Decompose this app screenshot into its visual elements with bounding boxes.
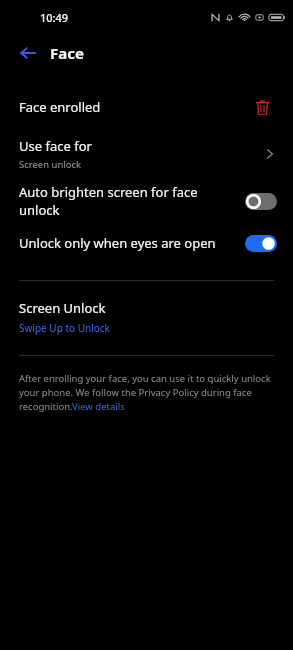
staticText: Screen Unlock <box>19 299 106 317</box>
staticText: 10:49 <box>40 10 69 25</box>
button[interactable]: Unlock only when eyes are open <box>0 222 293 264</box>
staticText: Screen unlock <box>19 158 82 171</box>
button[interactable]: Delete face data <box>250 95 274 119</box>
staticText: Face enrolled <box>19 98 250 116</box>
staticText: Face <box>50 43 84 63</box>
button[interactable]: On <box>245 235 277 252</box>
button[interactable]: Screen Unlock <box>0 281 293 355</box>
button[interactable]: Auto brighten screen for face unlock <box>0 180 293 222</box>
staticText: Auto brighten screen for face unlock <box>19 183 239 219</box>
button[interactable]: Back <box>14 39 42 67</box>
button[interactable]: Face enrolled <box>0 86 293 128</box>
button[interactable]: Use face for <box>0 128 293 180</box>
button[interactable]: After enrolling your face, you can use i… <box>0 372 293 413</box>
staticText: Unlock only when eyes are open <box>19 234 239 252</box>
staticText: Swipe Up to Unlock <box>19 321 110 335</box>
button[interactable]: Off <box>245 193 277 210</box>
staticText: Use face for <box>19 137 92 155</box>
